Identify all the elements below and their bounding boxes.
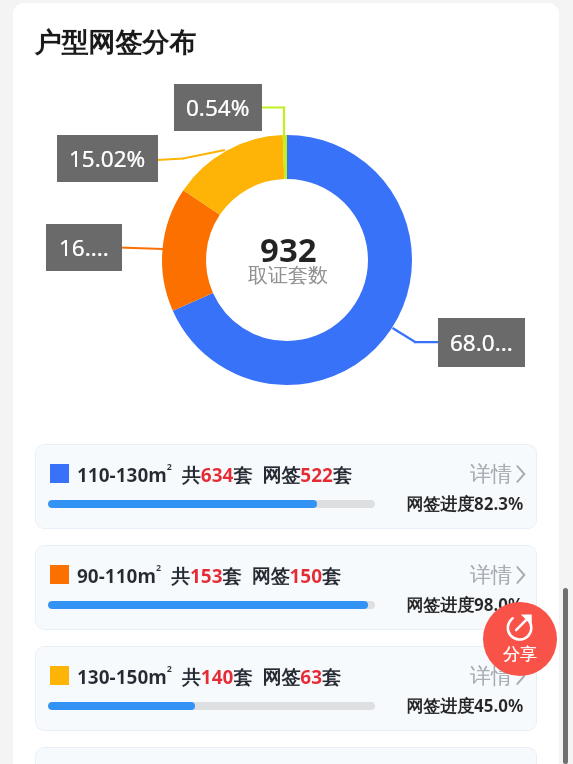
staticText: 详情 [470,663,512,689]
button[interactable]: 130-150m2 共140套 网签63套 [35,646,537,731]
staticText: 取证套数 [248,263,328,288]
staticText: 网签进度98.0% [406,593,524,616]
staticText: 110-130m2 共634套 网签522套 [77,460,352,487]
staticText: 15.02% [69,143,146,174]
button[interactable]: 150-170m2 共5套 网签5套 [35,747,537,764]
staticText: 90-110m2 共153套 网签150套 [77,561,342,588]
staticText: 详情 [470,562,512,588]
staticText: 分享 [503,644,537,665]
button[interactable]: 110-130m2 共634套 网签522套 [35,444,537,529]
staticText: 详情 [470,461,512,487]
staticText: 68.0... [450,327,513,358]
button[interactable]: 分享 [483,602,557,676]
staticText: 网签进度82.3% [406,492,524,515]
staticText: 网签进度45.0% [406,694,524,717]
button[interactable]: 90-110m2 共153套 网签150套 [35,545,537,630]
staticText: 户型网签分布 [34,26,196,60]
staticText: 130-150m2 共140套 网签63套 [77,662,342,689]
staticText: 0.54% [186,92,250,123]
staticText: 932 [260,227,317,272]
staticText: 16.... [59,232,109,263]
